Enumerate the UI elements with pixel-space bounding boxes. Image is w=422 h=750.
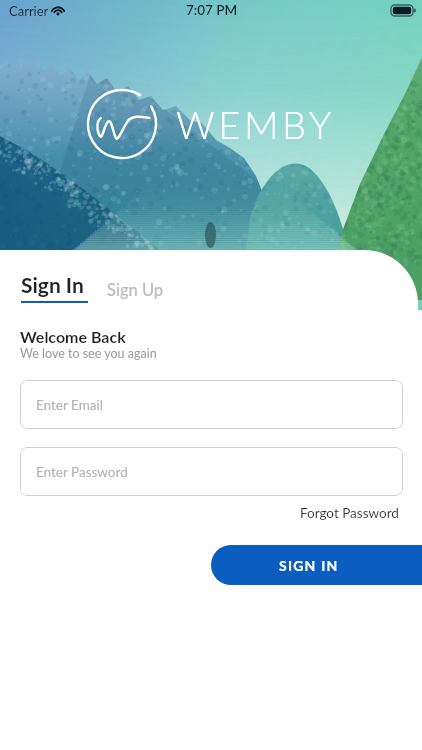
button[interactable]: Sign In [21, 272, 88, 303]
button[interactable]: Sign Up [103, 276, 168, 304]
staticText: Sign In [21, 272, 84, 297]
staticText: Forgot Password [300, 505, 399, 521]
staticText: Enter Email [36, 397, 103, 413]
button[interactable]: Forgot Password [294, 501, 405, 525]
staticText: We love to see you again [20, 346, 157, 361]
other: Wemby logo [86, 88, 158, 160]
staticText: 7:07 PM [186, 2, 238, 18]
button[interactable]: Enter Email [20, 380, 403, 429]
staticText: Welcome Back [20, 327, 126, 346]
staticText: Carrier [9, 3, 49, 19]
staticText: Sign Up [107, 280, 164, 300]
staticText: Enter Password [36, 464, 128, 480]
staticText: SIGN IN [279, 557, 339, 574]
button[interactable]: Enter Password [20, 447, 403, 496]
staticText: WEMBY [176, 101, 336, 147]
button[interactable]: SIGN IN [211, 545, 422, 585]
